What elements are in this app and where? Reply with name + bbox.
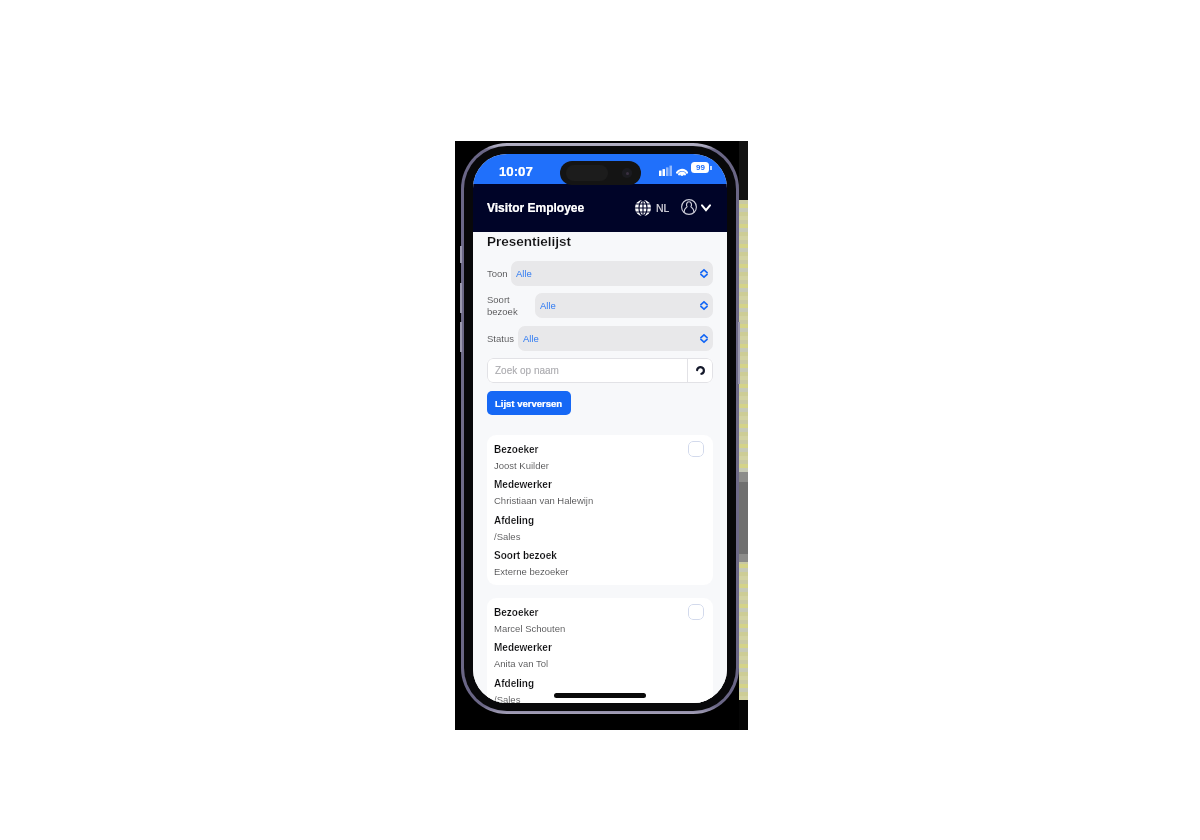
button[interactable]: Bezoeker (487, 435, 713, 585)
staticText: Marcel Schouten (494, 623, 566, 634)
button[interactable]: Reset search (688, 358, 713, 383)
staticText: Presentielijst (487, 234, 572, 249)
staticText: Visitor Employee (487, 201, 585, 214)
staticText: 99 (696, 163, 705, 172)
staticText: /Sales (494, 694, 521, 703)
staticText: Afdeling (494, 678, 534, 689)
staticText: /Sales (494, 531, 521, 542)
staticText: Externe bezoeker (494, 566, 569, 577)
button[interactable]: Zoek op naam (487, 358, 687, 383)
staticText: Medewerker (494, 479, 552, 490)
button[interactable]: Alle (518, 326, 713, 351)
button[interactable]: Alle (511, 261, 713, 286)
staticText: 10:07 (499, 164, 533, 179)
staticText: Joost Kuilder (494, 460, 549, 471)
staticText: Bezoeker (494, 607, 539, 618)
staticText: Toon (487, 268, 508, 279)
staticText: Soort bezoek (487, 294, 518, 317)
button[interactable]: Lijst verversen (487, 391, 571, 415)
staticText: Alle (523, 333, 539, 344)
staticText: Medewerker (494, 642, 552, 653)
staticText: Status (487, 333, 514, 344)
staticText: Zoek op naam (495, 365, 559, 376)
staticText: Alle (516, 268, 532, 279)
button[interactable]: Bezoeker (487, 598, 713, 703)
button[interactable]: Language (633, 198, 672, 218)
button[interactable]: Select visitor (688, 604, 704, 620)
staticText: Lijst verversen (495, 398, 563, 409)
staticText: Soort bezoek (494, 550, 557, 561)
button[interactable]: Account (679, 197, 713, 217)
staticText: Bezoeker (494, 444, 539, 455)
staticText: Anita van Tol (494, 658, 549, 669)
staticText: Afdeling (494, 515, 534, 526)
button[interactable]: Alle (535, 293, 713, 318)
button[interactable]: Select visitor (688, 441, 704, 457)
staticText: Christiaan van Halewijn (494, 495, 594, 506)
staticText: Alle (540, 300, 556, 311)
other: Account (681, 199, 697, 215)
staticText: NL (656, 202, 670, 214)
other: Language (635, 200, 651, 216)
